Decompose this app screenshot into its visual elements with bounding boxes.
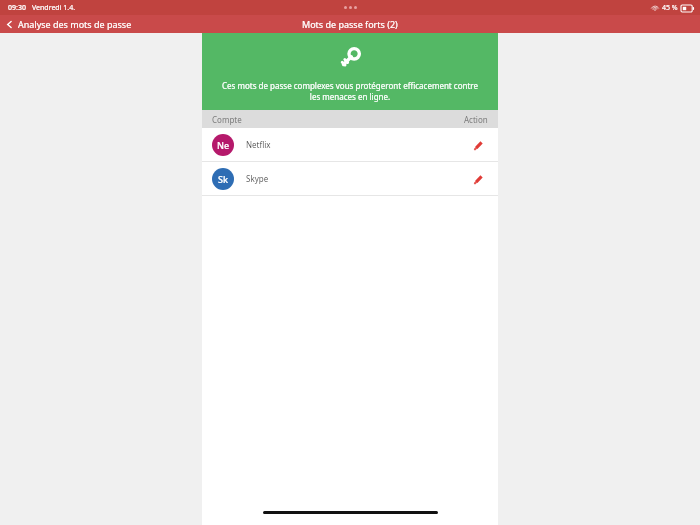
staticText: Ne [217,139,230,151]
staticText: Skype [246,173,269,184]
staticText: 45 % [662,3,678,13]
staticText: Analyse des mots de passe [18,18,132,30]
staticText: Netflix [246,139,271,150]
button[interactable]: Modifier [468,169,488,189]
button[interactable]: Back [0,16,140,32]
staticText: Vendredi 1.4. [32,3,76,13]
staticText: Mots de passe forts (2) [302,18,398,30]
staticText: Ces mots de passe complexes vous protége… [222,80,478,102]
staticText: Sk [218,173,228,185]
button[interactable]: Sk [202,162,498,195]
button[interactable]: Ne [202,128,498,161]
staticText: Compte [212,114,242,125]
staticText: 09:30 [8,3,26,13]
other: Back [5,20,14,29]
staticText: Action [464,114,488,125]
button[interactable]: Modifier [468,135,488,155]
